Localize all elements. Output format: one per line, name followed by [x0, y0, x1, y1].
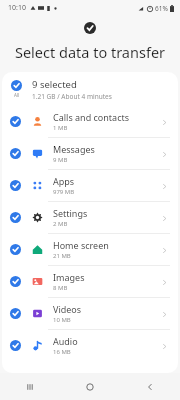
- button[interactable]: Videos: [2, 298, 178, 329]
- staticText: 9 MB: [53, 156, 68, 164]
- button[interactable]: Home: [60, 373, 120, 400]
- staticText: All: [14, 92, 20, 98]
- staticText: 979 MB: [53, 188, 75, 196]
- other: Open Apps: [158, 180, 170, 192]
- staticText: 16 MB: [53, 348, 71, 356]
- button[interactable]: Messages: [2, 138, 178, 169]
- staticText: 21 MB: [53, 252, 71, 260]
- staticText: Videos: [53, 303, 82, 315]
- staticText: 10 MB: [53, 316, 71, 324]
- other: Open Home screen: [158, 244, 170, 256]
- other: Open Messages: [158, 148, 170, 160]
- button[interactable]: Calls and contacts: [2, 106, 178, 137]
- staticText: 10:10: [8, 3, 26, 13]
- staticText: 1.21 GB / About 4 minutes: [32, 92, 112, 101]
- staticText: 1 MB: [53, 124, 68, 132]
- staticText: Home screen: [53, 239, 109, 251]
- other: Open Calls and contacts: [158, 116, 170, 128]
- staticText: 2 MB: [53, 220, 68, 228]
- staticText: Apps: [53, 175, 75, 187]
- staticText: 61%: [155, 4, 168, 13]
- button[interactable]: Settings: [2, 202, 178, 233]
- other: Open Videos: [158, 308, 170, 320]
- other: Open Images: [158, 276, 170, 288]
- staticText: Settings: [53, 207, 88, 219]
- staticText: Messages: [53, 143, 95, 155]
- other: Open Audio: [158, 340, 170, 352]
- button[interactable]: Audio: [2, 330, 178, 361]
- button[interactable]: All: [2, 72, 178, 106]
- button[interactable]: Back: [120, 373, 180, 400]
- staticText: 8 MB: [53, 284, 68, 292]
- staticText: Select data to transfer: [0, 42, 180, 62]
- button[interactable]: Home screen: [2, 234, 178, 265]
- button[interactable]: Apps: [2, 170, 178, 201]
- button[interactable]: Recents: [0, 373, 60, 400]
- button[interactable]: Images: [2, 266, 178, 297]
- staticText: Audio: [53, 335, 78, 347]
- other: Open Settings: [158, 212, 170, 224]
- staticText: 9 selected: [32, 78, 77, 91]
- staticText: Calls and contacts: [53, 111, 130, 123]
- staticText: Images: [53, 271, 85, 283]
